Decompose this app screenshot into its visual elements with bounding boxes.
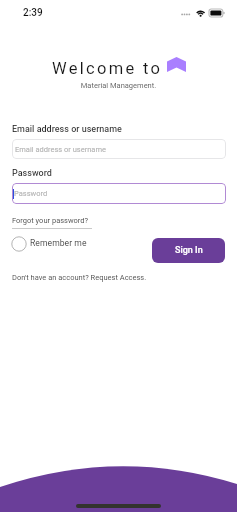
staticText: Welcome to: [52, 59, 163, 78]
staticText: Forgot your password?: [12, 216, 89, 225]
button[interactable]: Password: [12, 183, 226, 204]
button[interactable]: Remember me: [11, 234, 85, 253]
staticText: Sign In: [175, 245, 203, 256]
button[interactable]: Forgot your password?: [12, 216, 92, 225]
other: Home indicator: [76, 504, 161, 508]
staticText: Remember me: [30, 238, 87, 248]
button[interactable]: Sign In: [152, 238, 225, 263]
button[interactable]: Don't have an account? Request Access.: [12, 273, 147, 282]
staticText: Email address or username: [12, 124, 122, 135]
staticText: 2:39: [23, 7, 43, 19]
staticText: Material Management.: [0, 81, 237, 90]
button[interactable]: Email address or username: [12, 139, 226, 159]
staticText: Email address or username: [15, 145, 106, 154]
staticText: Password: [14, 189, 48, 198]
staticText: Password: [12, 168, 52, 179]
